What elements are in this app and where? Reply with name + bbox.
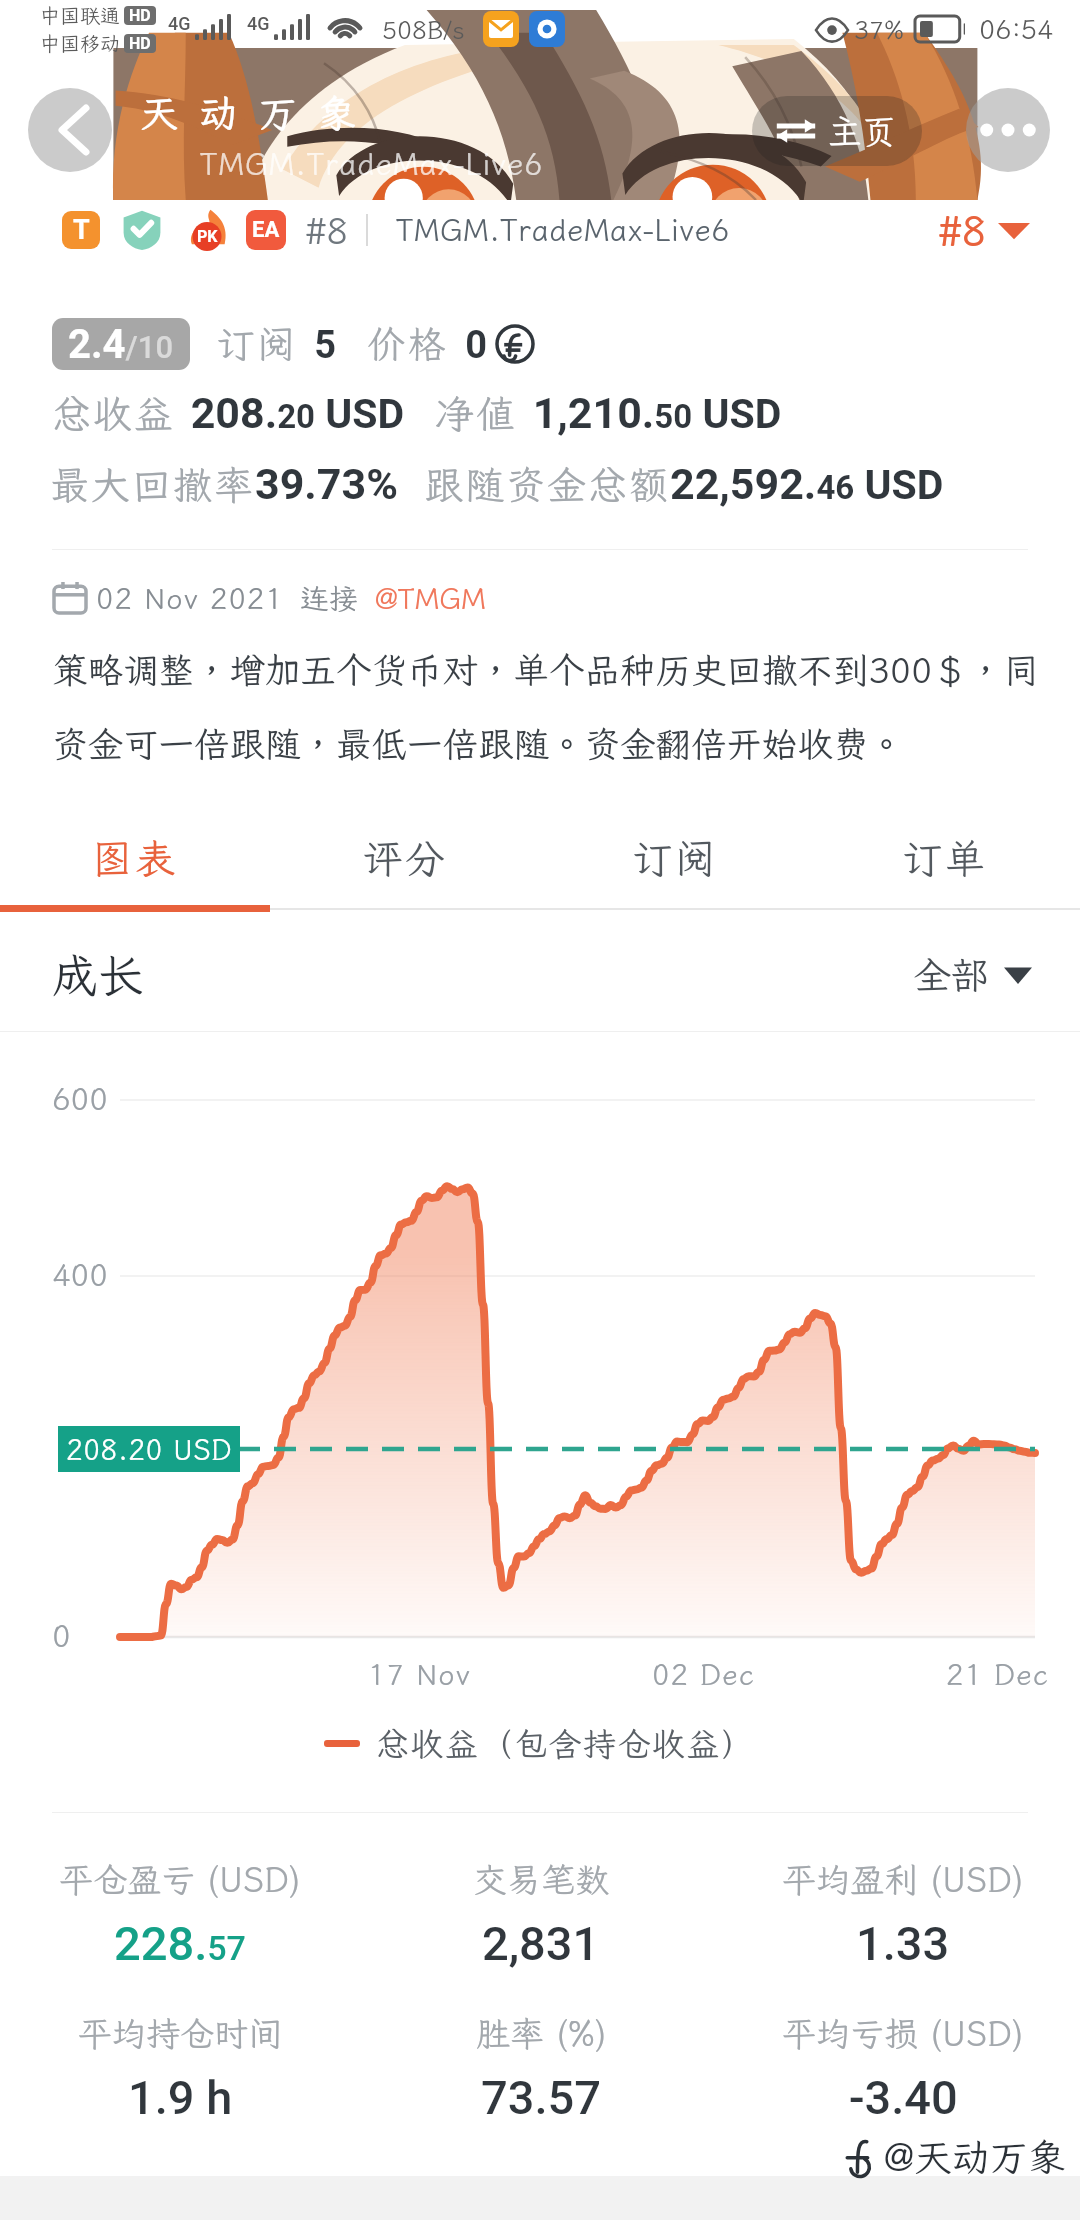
staticText: -3.40 [849, 2070, 958, 2125]
staticText: 资金可一倍跟随，最低一倍跟随。资金翻倍开始收费。 [52, 720, 905, 767]
staticText: HD [129, 34, 151, 53]
staticText: 策略调整，增加五个货币对，单个品种历史回撤不到300＄，同 [52, 646, 1039, 693]
button[interactable]: @TMGM [375, 579, 486, 617]
staticText: T [73, 214, 90, 246]
staticText: 最大回撤率39.73% [50, 459, 398, 510]
staticText: 净值 1,210.50 USD [435, 388, 782, 439]
staticText: 4G [247, 13, 270, 34]
staticText: 73.57 [481, 2070, 601, 2125]
staticText: 中国移动 [40, 30, 120, 56]
button[interactable]: Back [28, 88, 112, 172]
staticText: 平仓盈亏 (USD) [59, 1857, 301, 1902]
staticText: 2.4/10 [68, 321, 174, 368]
staticText: 全部 [913, 950, 990, 1000]
staticText: 天 动 万 象 [140, 88, 360, 138]
button[interactable]: 全部 [909, 944, 1036, 1006]
staticText: #8 [305, 207, 349, 254]
staticText: #8 [938, 204, 986, 256]
staticText: PK [197, 227, 218, 246]
button[interactable]: #8 [934, 204, 1034, 256]
staticText: 06:54 [979, 11, 1054, 47]
staticText: 02 Dec [652, 1655, 756, 1693]
staticText: 交易笔数 [473, 1857, 609, 1902]
staticText: 4G [168, 13, 191, 34]
staticText: 508B/s [382, 13, 465, 46]
staticText: 17 Nov [368, 1655, 471, 1693]
staticText: 1.33 [856, 1916, 950, 1971]
staticText: 胜率 (%) [476, 2011, 607, 2056]
staticText: 21 Dec [946, 1655, 1050, 1693]
staticText: 图表 [92, 832, 178, 885]
button[interactable]: Verified account [122, 210, 162, 250]
staticText: @天动万象 [884, 2132, 1066, 2182]
staticText: 总收益（包含持仓收益） [376, 1722, 756, 1765]
staticText: EA [252, 217, 280, 243]
staticText: 0 [52, 1615, 71, 1656]
staticText: 主页 [828, 109, 896, 154]
staticText: 600 [52, 1078, 108, 1119]
button[interactable]: More options [966, 88, 1050, 172]
staticText: 208.20 USD [66, 1431, 233, 1468]
staticText: 中国联通 [40, 2, 120, 28]
button[interactable]: TMGM.TradeMax-Live6 [396, 210, 730, 250]
button[interactable]: PK [186, 209, 228, 251]
staticText: 订阅 [632, 832, 718, 885]
button[interactable]: 订单 [810, 810, 1080, 906]
staticText: 平均亏损 (USD) [782, 2011, 1024, 2056]
button[interactable]: T [62, 211, 100, 249]
button[interactable]: 评分 [270, 810, 540, 906]
staticText: 跟随资金总额22,592.46 USD [424, 459, 944, 510]
staticText: 400 [52, 1254, 108, 1295]
staticText: 成长 [52, 945, 144, 1006]
staticText: 平均持仓时间 [78, 2011, 282, 2056]
staticText: 价格 0 [367, 319, 488, 369]
staticText: 228.57 [114, 1916, 246, 1971]
staticText: 订阅 5 [216, 319, 337, 369]
staticText: 订单 [902, 832, 988, 885]
staticText: HD [129, 6, 151, 25]
button[interactable]: EA [246, 210, 286, 250]
staticText: 2,831 [482, 1916, 600, 1971]
button[interactable]: 订阅 [540, 810, 810, 906]
staticText: 平均盈利 (USD) [782, 1857, 1024, 1902]
staticText: TMGM.TradeMax-Live6 [200, 144, 544, 184]
button[interactable]: 图表 [0, 810, 270, 906]
staticText: 37% [854, 13, 905, 46]
staticText: 连接 [300, 579, 359, 617]
staticText: 总收益 208.20 USD [52, 388, 405, 439]
button[interactable]: 主页 [752, 96, 922, 166]
staticText: 02 Nov 2021 [96, 579, 284, 617]
staticText: 1.9 h [128, 2070, 233, 2125]
staticText: 评分 [362, 832, 448, 885]
